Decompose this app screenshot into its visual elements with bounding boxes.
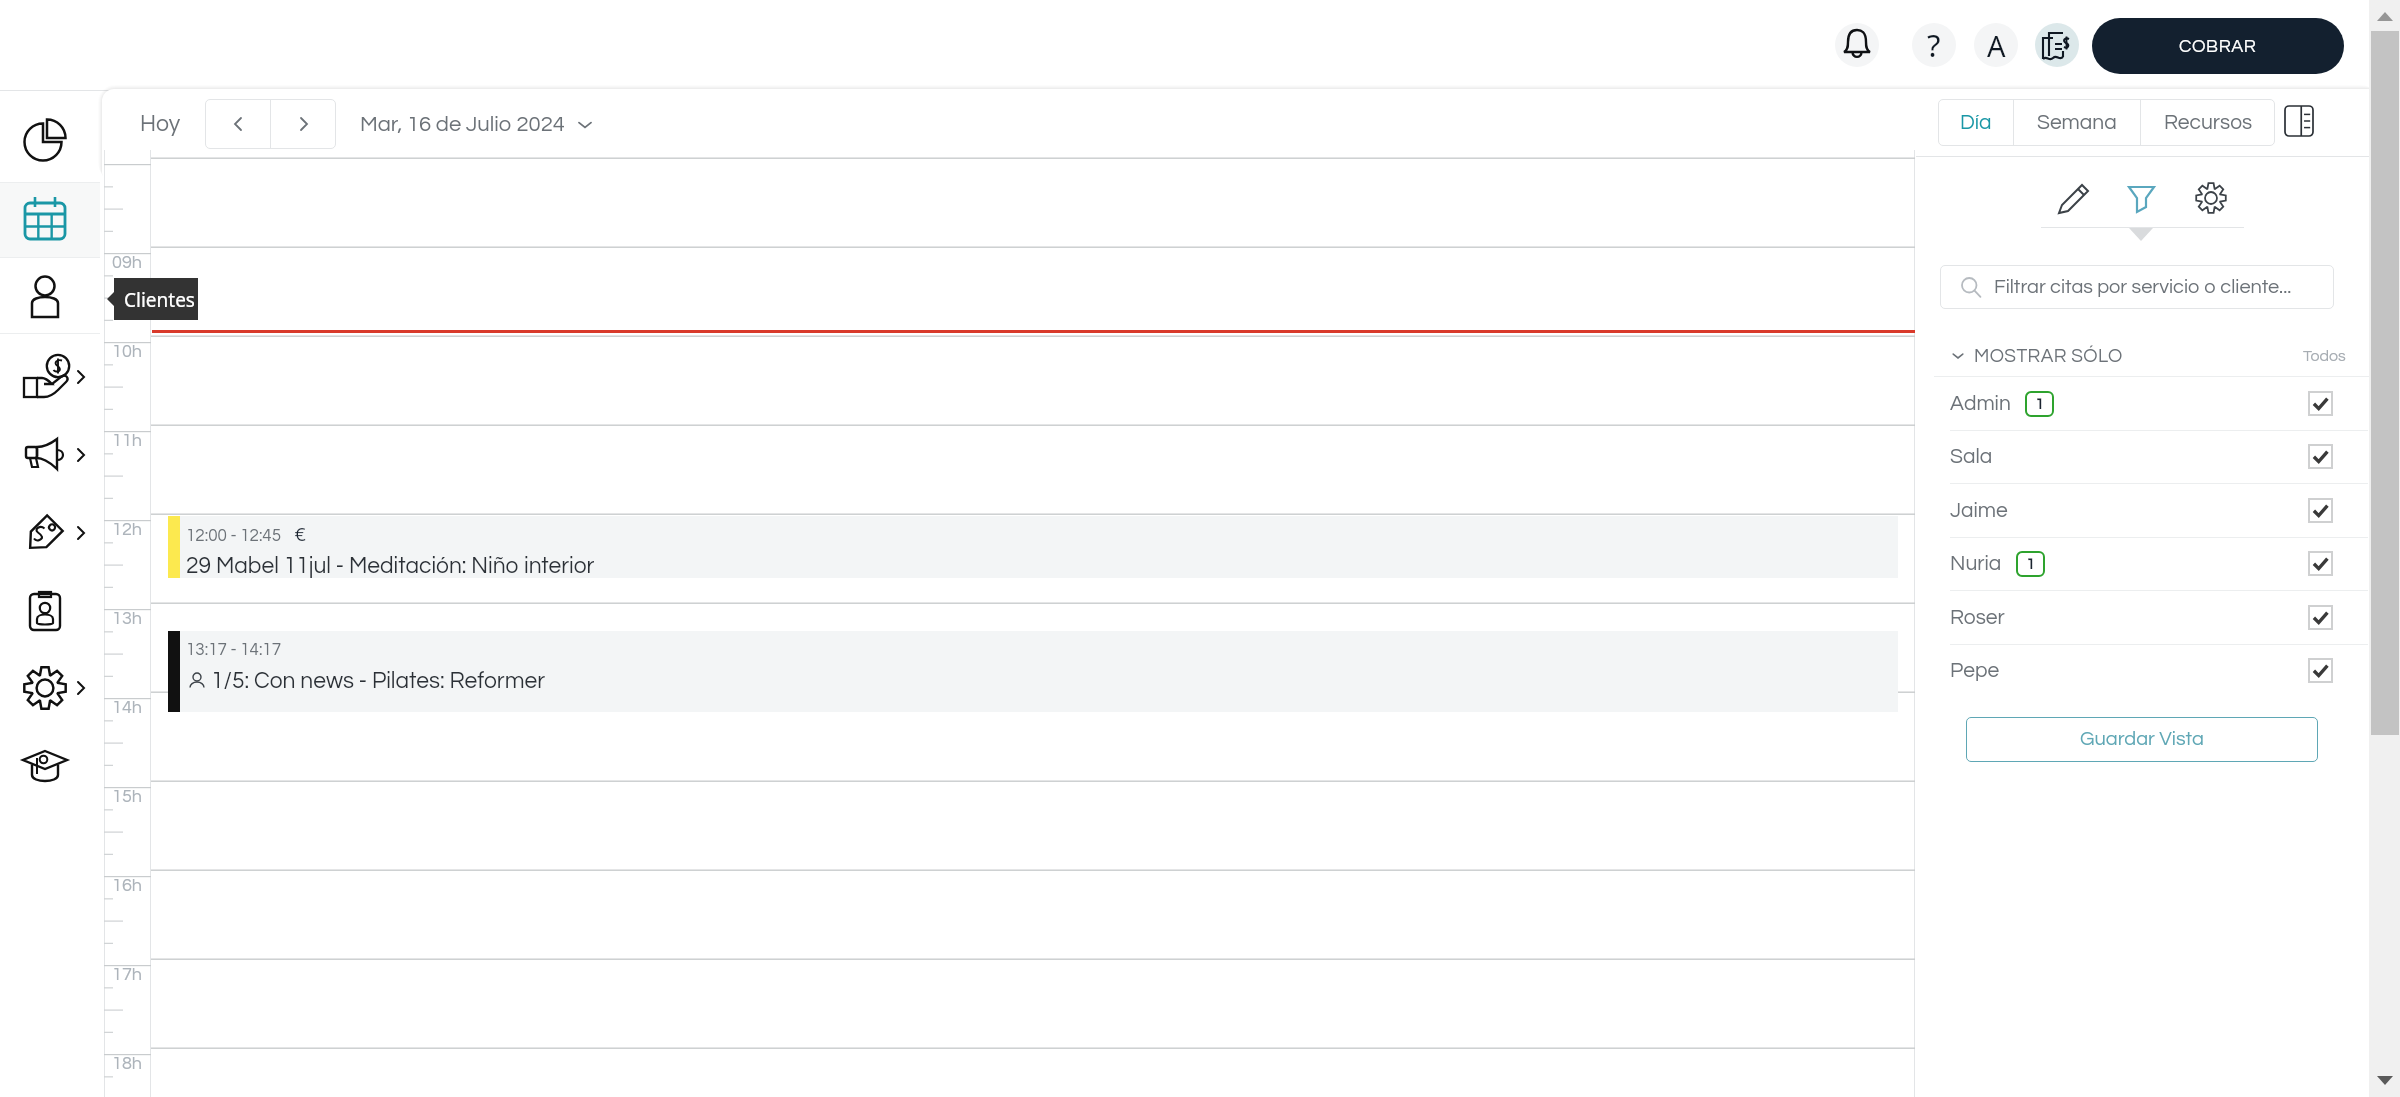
staticText: MOSTRAR SÓLO (1974, 346, 2123, 366)
staticText: ? (1927, 24, 1941, 66)
staticText: 13h (112, 609, 142, 628)
staticText: Jaime (1950, 500, 2008, 522)
staticText: Sala (1950, 446, 1993, 468)
staticText: Día (1960, 112, 1992, 134)
staticText: Mar, 16 de Julio 2024 (360, 113, 565, 136)
button[interactable]: 13:17 - 14:17 (168, 631, 1898, 712)
staticText: 18h (112, 1054, 142, 1073)
button[interactable]: Roser (1950, 591, 2333, 644)
staticText: Admin (1950, 393, 2011, 415)
staticText: Todos (2303, 348, 2346, 364)
button[interactable]: Accessibility (1974, 23, 2018, 67)
staticText: 12h (112, 520, 142, 539)
staticText: 1 (2035, 396, 2044, 412)
staticText: Filtrar citas por servicio o cliente... (1994, 277, 2292, 298)
button[interactable]: Filtrar citas por servicio o cliente... (1940, 265, 2334, 309)
staticText: € (294, 525, 307, 546)
button[interactable]: Mar, 16 de Julio 2024 (354, 107, 601, 142)
staticText: 17h (112, 965, 142, 984)
staticText: Semana (2037, 112, 2117, 134)
staticText: 1 (2026, 556, 2035, 572)
button[interactable]: Edit (2056, 180, 2092, 216)
button[interactable]: Previous day (205, 99, 270, 149)
button[interactable]: Settings (2193, 180, 2229, 216)
button[interactable]: Toggle panel (2282, 105, 2316, 139)
staticText: 11h (112, 431, 142, 450)
staticText: 29 Mabel 11jul - Meditación: Niño interi… (186, 554, 595, 577)
button[interactable]: Recursos (2141, 99, 2275, 146)
button[interactable]: Pepe (1950, 644, 2333, 697)
button[interactable]: COBRAR (2092, 18, 2344, 74)
button[interactable]: Día (1938, 99, 2013, 146)
button[interactable]: Jaime (1950, 484, 2333, 537)
staticText: Clientes (124, 287, 195, 313)
button[interactable]: Invoices (2035, 23, 2079, 67)
staticText: COBRAR (2179, 37, 2257, 56)
staticText: 09h (112, 253, 142, 272)
button[interactable]: Guardar Vista (1966, 717, 2318, 762)
staticText: Recursos (2164, 112, 2253, 134)
button[interactable]: Next day (271, 99, 336, 149)
button[interactable]: MOSTRAR SÓLO (1950, 346, 2123, 366)
button[interactable]: 12:00 - 12:45 (168, 516, 1898, 578)
button[interactable]: Hoy (134, 104, 187, 144)
staticText: Roser (1950, 607, 2005, 629)
staticText: 10h (112, 342, 142, 361)
staticText: Guardar Vista (2080, 729, 2204, 750)
staticText: 14h (112, 698, 142, 717)
staticText: Nuria (1950, 553, 2002, 575)
button[interactable]: Notifications (1835, 23, 1879, 67)
button[interactable]: Filter (2123, 180, 2159, 216)
button[interactable]: Admin (1950, 377, 2333, 430)
staticText: 16h (112, 876, 142, 895)
button[interactable]: Nuria (1950, 537, 2333, 590)
button[interactable]: Help (1912, 23, 1956, 67)
staticText: A (1987, 26, 2006, 65)
staticText: 12:00 - 12:45 (186, 527, 282, 545)
staticText: Hoy (140, 112, 181, 136)
staticText: 15h (112, 787, 142, 806)
staticText: 1/5: Con news - Pilates: Reformer (211, 669, 545, 692)
button[interactable]: Sala (1950, 430, 2333, 483)
button[interactable]: Semana (2014, 99, 2140, 146)
button[interactable]: Todos (2303, 348, 2346, 364)
staticText: 13:17 - 14:17 (186, 641, 282, 659)
staticText: Pepe (1950, 660, 2000, 682)
